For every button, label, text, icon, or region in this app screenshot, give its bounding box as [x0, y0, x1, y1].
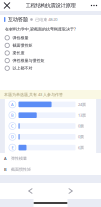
staticText: A — [11, 102, 14, 107]
staticText: 工程结构抗震设计原理 — [25, 2, 75, 9]
button[interactable]: A — [0, 153, 101, 164]
staticText: 弹性模量 — [12, 35, 28, 40]
staticText: 弹性模量 — [11, 156, 27, 161]
staticText: 0票 — [78, 123, 84, 129]
button[interactable]: 截面惯性矩 — [5, 42, 96, 49]
button[interactable]: B — [0, 164, 101, 175]
button[interactable]: More — [87, 0, 101, 11]
staticText: D — [11, 134, 14, 139]
button[interactable]: Close — [0, 0, 14, 11]
staticText: 互动答题 — [8, 16, 28, 23]
staticText: 以上都不对 — [12, 66, 32, 71]
staticText: 已结束 48:20 — [35, 17, 57, 22]
staticText: 13票 — [78, 112, 86, 118]
staticText: 在材料力学中,梁截面的抗弯刚度取决于? — [5, 26, 76, 32]
button[interactable]: 以上都不对 — [5, 64, 96, 72]
staticText: 弹性模量与惯性矩 — [12, 58, 44, 63]
staticText: 本题为单选题,共有 43 人参与作答 — [4, 92, 63, 97]
staticText: 截面惯性矩 — [12, 43, 32, 48]
staticText: C — [11, 123, 14, 129]
staticText: E — [11, 145, 13, 150]
staticText: 6票 — [78, 145, 84, 150]
button[interactable]: Next — [61, 185, 79, 197]
staticText: 梁长度 — [12, 50, 24, 55]
staticText: 24票 — [78, 102, 86, 107]
button[interactable]: Previous — [21, 185, 39, 197]
staticText: B — [4, 167, 7, 172]
staticText: B — [11, 112, 14, 118]
staticText: A — [4, 156, 7, 161]
staticText: 截面惯性矩 — [11, 167, 31, 172]
button[interactable]: 弹性模量与惯性矩 — [5, 57, 96, 64]
button[interactable]: 梁长度 — [5, 49, 96, 57]
button[interactable]: 弹性模量 — [5, 34, 96, 42]
staticText: 0票 — [78, 134, 84, 139]
